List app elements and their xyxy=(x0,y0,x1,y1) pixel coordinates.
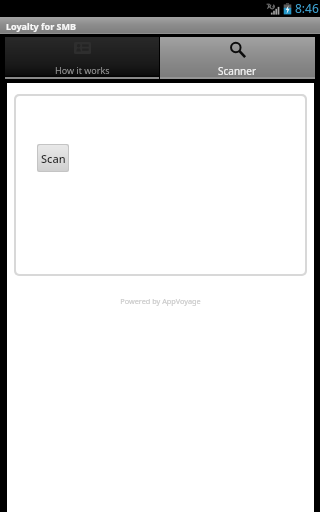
other: How it works xyxy=(74,42,91,54)
staticText: 8:46 xyxy=(295,0,319,16)
other: Battery xyxy=(283,3,292,15)
button[interactable]: How it works xyxy=(5,36,159,79)
staticText: Scan xyxy=(41,151,66,166)
button[interactable]: Scan xyxy=(38,145,68,171)
button[interactable]: Scanner xyxy=(160,36,315,79)
staticText: How it works xyxy=(55,64,110,76)
staticText: Loyalty for SMB xyxy=(6,20,76,32)
other: Signal strength xyxy=(266,3,280,15)
staticText: Scanner xyxy=(218,64,257,78)
other: Scanner xyxy=(229,41,246,58)
staticText: Powered by AppVoyage xyxy=(7,296,314,306)
